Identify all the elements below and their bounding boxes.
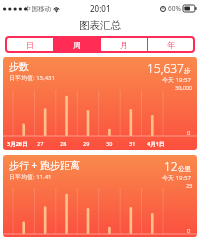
button[interactable]: 月 [101, 37, 147, 52]
staticText: 12 [164, 158, 178, 174]
staticText: 28 [60, 140, 67, 147]
staticText: 日平均值: 11.41 [9, 173, 52, 181]
staticText: 图表汇总 [79, 19, 121, 32]
button[interactable]: 步数 [3, 57, 197, 150]
staticText: 年 [167, 40, 175, 50]
staticText: 0 [187, 227, 191, 234]
staticText: 3月26日 [7, 140, 28, 148]
staticText: 30,000 [175, 84, 193, 91]
staticText: 周 [73, 40, 81, 50]
staticText: 步数 [9, 60, 29, 73]
button[interactable]: 步行 + 跑步距离 [3, 155, 197, 237]
staticText: 4月1日 [147, 140, 165, 148]
staticText: 29 [83, 140, 90, 147]
staticText: 日 [26, 40, 34, 50]
staticText: 25 [186, 182, 193, 189]
staticText: 公里 [178, 165, 191, 173]
staticText: 步 [184, 67, 191, 75]
staticText: 31 [129, 140, 136, 147]
button[interactable]: 日 [6, 37, 53, 52]
staticText: 日平均值: 15,431 [9, 74, 55, 82]
staticText: 60% [168, 4, 181, 13]
staticText: 27 [37, 140, 44, 147]
staticText: 今天 19:57 [162, 174, 191, 182]
staticText: 中国移动 [25, 5, 51, 13]
staticText: 30 [106, 140, 113, 147]
staticText: 步行 + 跑步距离 [9, 158, 80, 172]
staticText: 15,637 [147, 60, 184, 76]
staticText: 今天 19:57 [162, 76, 191, 84]
staticText: 0 [187, 129, 191, 136]
staticText: 月 [120, 40, 128, 50]
button[interactable]: 年 [148, 37, 194, 52]
button[interactable]: 周 [54, 37, 100, 52]
staticText: 20:01 [90, 3, 111, 14]
